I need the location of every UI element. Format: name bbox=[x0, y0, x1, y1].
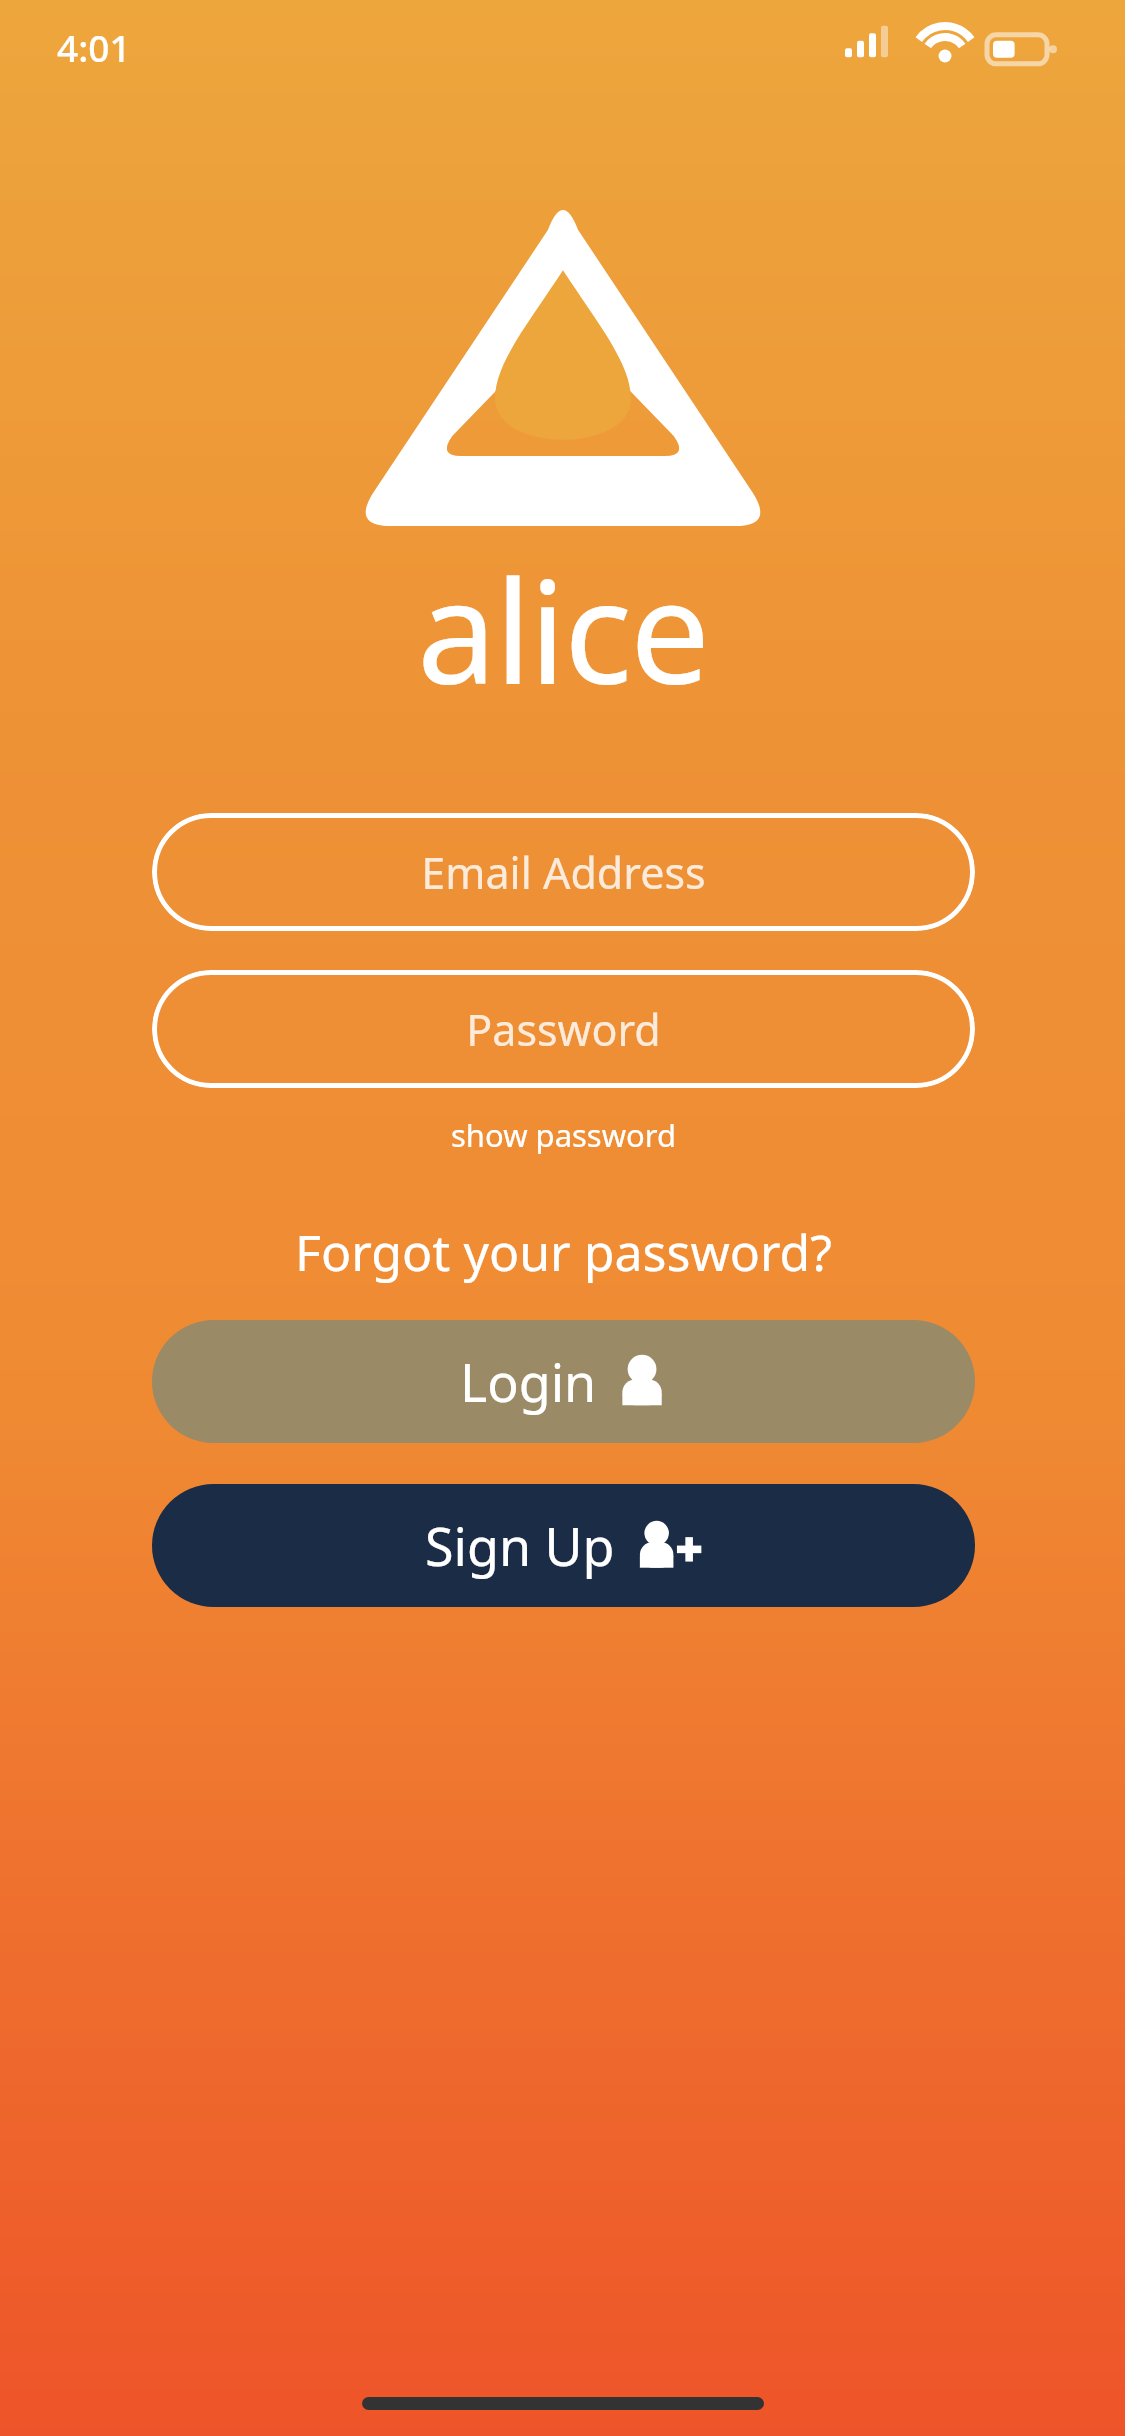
staticText: show password bbox=[451, 1114, 677, 1156]
button[interactable]: show password bbox=[441, 1110, 687, 1160]
staticText: Forgot your password? bbox=[295, 1218, 833, 1286]
button[interactable]: Login bbox=[152, 1320, 975, 1443]
staticText: Login bbox=[460, 1346, 597, 1417]
staticText: Email Address bbox=[421, 843, 706, 902]
button[interactable]: Forgot your password? bbox=[283, 1212, 845, 1292]
staticText: Password bbox=[466, 1000, 661, 1059]
button[interactable]: Sign Up bbox=[152, 1484, 975, 1607]
staticText: alice bbox=[417, 532, 709, 725]
staticText: 4:01 bbox=[57, 22, 131, 72]
staticText: Sign Up bbox=[425, 1510, 615, 1581]
button[interactable]: Email Address bbox=[152, 813, 975, 931]
button[interactable]: Password bbox=[152, 970, 975, 1088]
